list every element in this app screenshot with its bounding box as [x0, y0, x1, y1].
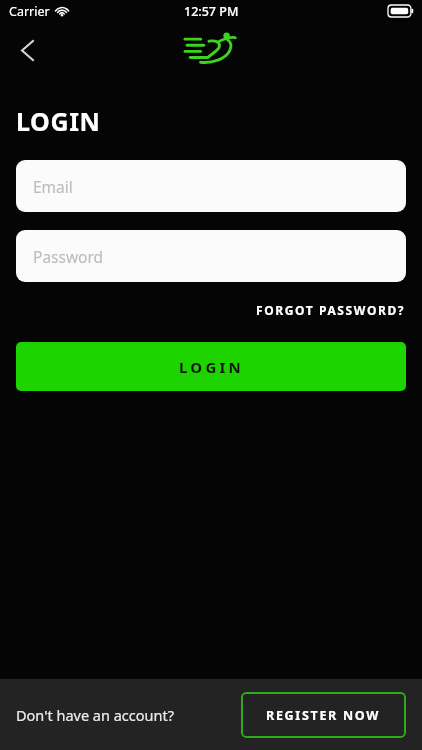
button[interactable]: REGISTER NOW	[241, 692, 406, 738]
staticText: FORGOT PASSWORD?	[256, 302, 406, 318]
staticText: LOGIN	[179, 357, 244, 377]
button[interactable]: FORGOT PASSWORD?	[256, 296, 406, 324]
button[interactable]: Password	[16, 230, 406, 282]
staticText: Email	[33, 176, 73, 197]
staticText: Carrier	[9, 3, 50, 20]
button[interactable]: Email	[16, 160, 406, 212]
staticText: REGISTER NOW	[266, 707, 381, 724]
button[interactable]: Back	[10, 33, 44, 67]
staticText: LOGIN	[16, 104, 101, 138]
staticText: Password	[33, 246, 104, 267]
staticText: Don't have an account?	[16, 705, 174, 725]
staticText: 12:57 PM	[184, 3, 239, 20]
button[interactable]: LOGIN	[16, 342, 406, 391]
